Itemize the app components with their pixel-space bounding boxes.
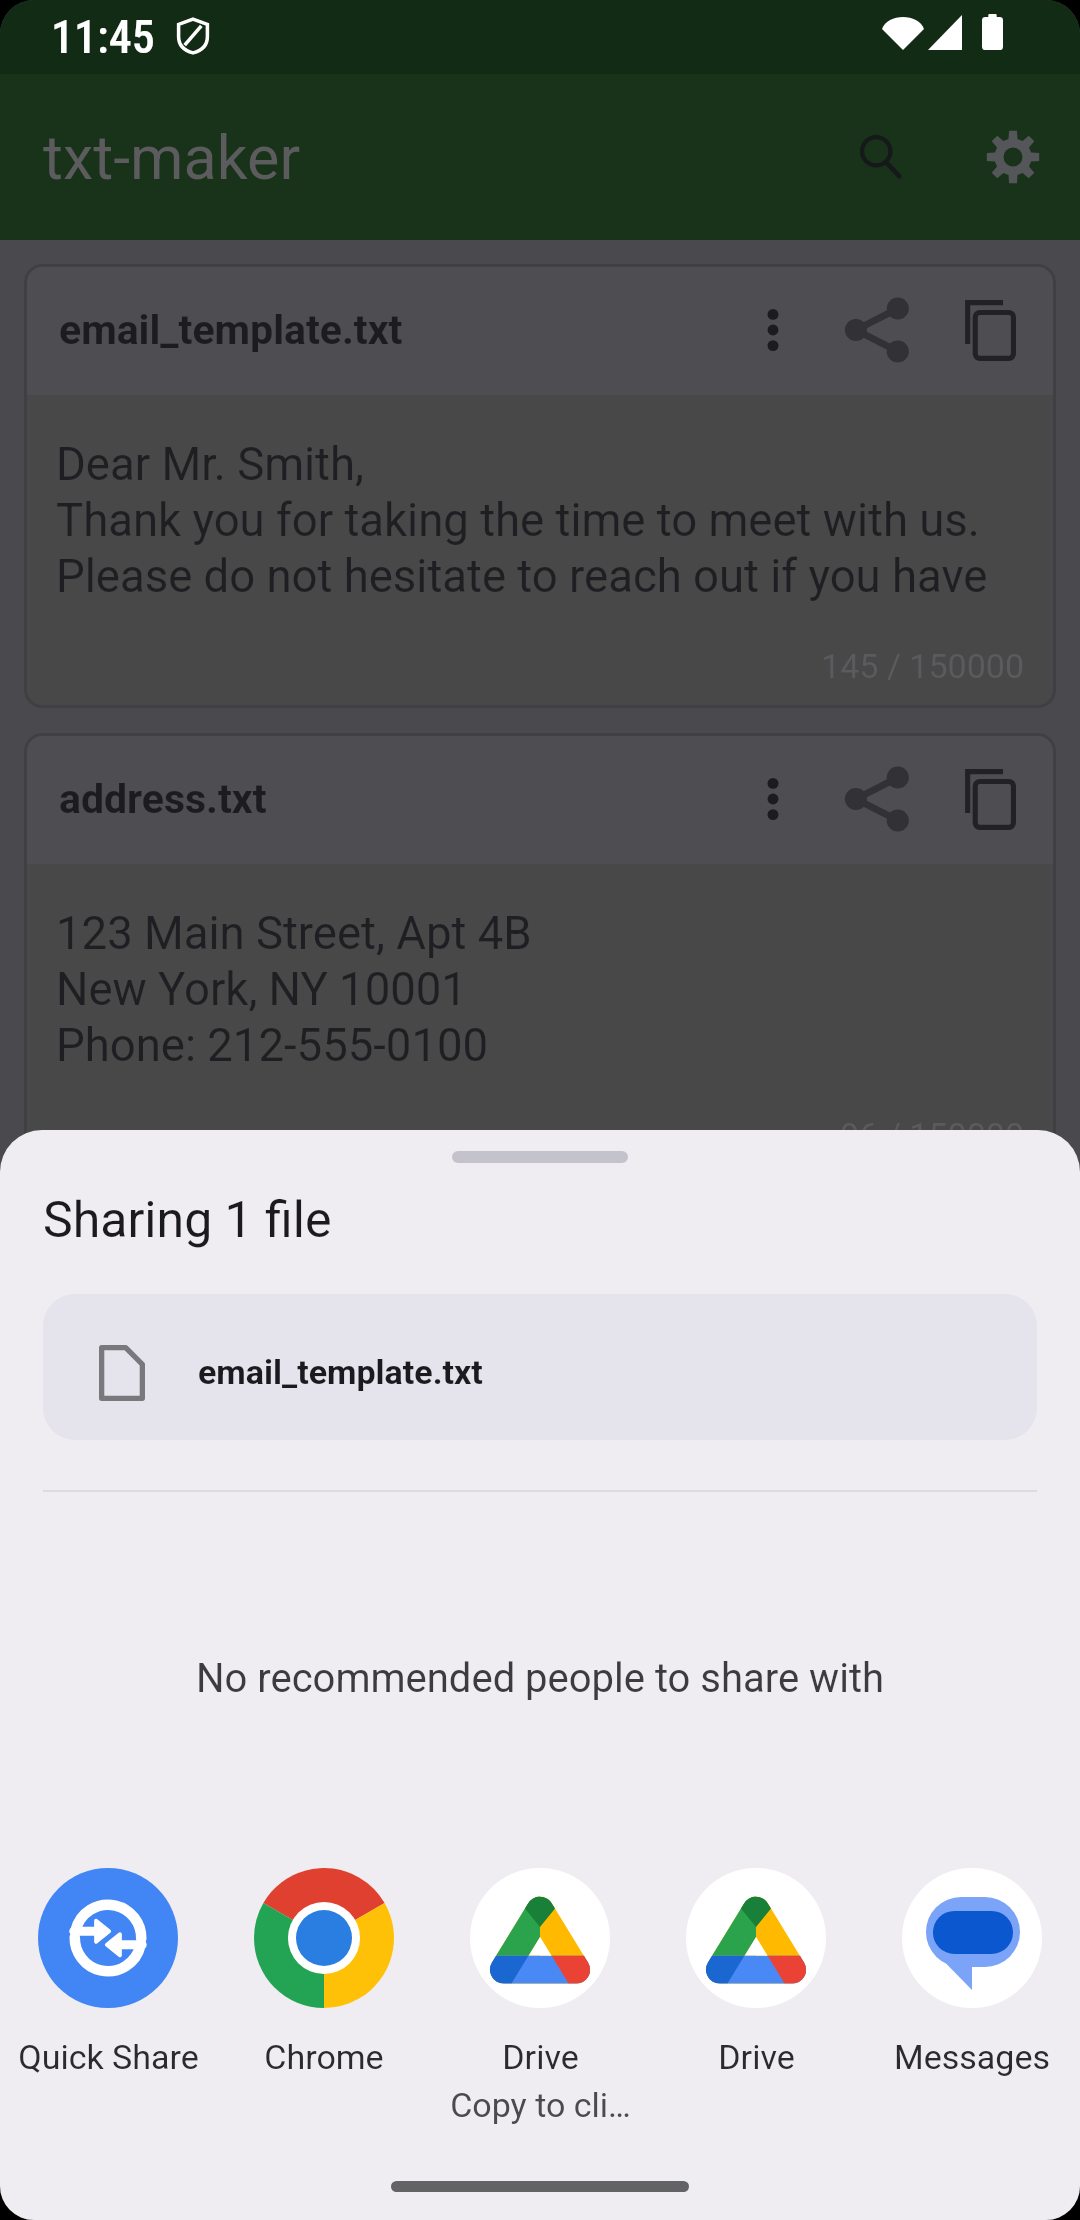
button[interactable]: email_template.txt — [43, 1294, 1037, 1440]
button[interactable]: Drive — [432, 1868, 648, 2125]
staticText: Sharing 1 file — [43, 1191, 332, 1250]
button[interactable]: More options — [725, 751, 821, 847]
staticText: txt-maker — [43, 122, 301, 193]
button[interactable]: email_template.txt — [24, 264, 1056, 708]
staticText: 145 / 150000 — [56, 646, 1024, 686]
staticText: Drive — [718, 2037, 795, 2077]
button[interactable]: Copy — [933, 743, 1045, 855]
staticText: address.txt — [59, 775, 267, 823]
staticText: Dear Mr. Smith, Thank you for taking the… — [56, 436, 988, 604]
button[interactable]: Copy — [933, 274, 1045, 386]
staticText: Drive — [502, 2037, 579, 2077]
staticText: 123 Main Street, Apt 4B New York, NY 100… — [56, 905, 532, 1073]
button[interactable]: More options — [725, 282, 821, 378]
button[interactable]: address.txt — [24, 733, 1056, 1177]
staticText: Chrome — [264, 2037, 384, 2077]
button[interactable]: Chrome — [216, 1868, 432, 2077]
staticText: 11:45 — [51, 10, 155, 64]
button[interactable]: Share — [821, 743, 933, 855]
button[interactable]: Messages — [864, 1868, 1080, 2077]
staticText: Messages — [894, 2037, 1050, 2077]
staticText: Copy to cli… — [450, 2085, 631, 2125]
button[interactable]: Quick Share — [0, 1868, 216, 2077]
staticText: 96 / 150000 — [56, 1115, 1024, 1155]
button[interactable]: Drive — [648, 1868, 864, 2077]
button[interactable]: Share — [821, 274, 933, 386]
button[interactable]: Settings — [947, 91, 1079, 223]
staticText: email_template.txt — [198, 1352, 483, 1392]
button[interactable]: Search — [815, 91, 947, 223]
staticText: email_template.txt — [59, 306, 403, 354]
staticText: Quick Share — [18, 2037, 199, 2077]
staticText: No recommended people to share with — [0, 1655, 1080, 1702]
